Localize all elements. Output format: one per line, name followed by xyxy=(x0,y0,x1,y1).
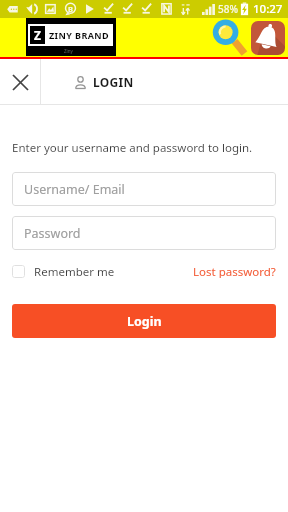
staticText: Password xyxy=(24,225,81,242)
button[interactable]: Z xyxy=(26,18,116,56)
staticText: Remember me xyxy=(34,264,115,278)
staticText: Ziny xyxy=(64,48,73,54)
staticText: ZINY BRAND xyxy=(49,29,110,41)
button[interactable]: Lost password? xyxy=(193,264,276,278)
button[interactable]: Notifications xyxy=(251,21,285,55)
button[interactable]: Password xyxy=(12,216,276,250)
button[interactable]: Close xyxy=(0,59,40,105)
button[interactable]: Username/ Email xyxy=(12,172,276,206)
button[interactable]: Search xyxy=(206,17,250,58)
staticText: Enter your username and password to logi… xyxy=(12,140,253,156)
staticText: 58% xyxy=(218,2,238,16)
staticText: B xyxy=(68,4,73,14)
button[interactable]: Remember me xyxy=(12,264,193,278)
staticText: Z xyxy=(34,27,41,43)
staticText: Lost password? xyxy=(193,264,276,278)
staticText: Login xyxy=(127,313,162,330)
staticText: 10:27 xyxy=(253,1,283,17)
staticText: Username/ Email xyxy=(24,181,125,198)
staticText: LOGIN xyxy=(93,74,134,90)
button[interactable]: Login xyxy=(12,304,276,338)
